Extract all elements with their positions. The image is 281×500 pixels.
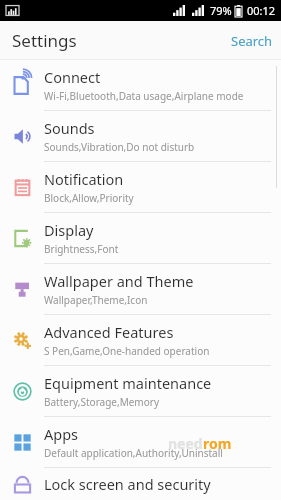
staticText: 00:12: [247, 3, 276, 18]
button[interactable]: Lock screen and security: [0, 468, 281, 500]
staticText: Default application,Authority,Uninstall: [44, 446, 223, 460]
button[interactable]: Connect: [0, 60, 281, 110]
staticText: Search: [231, 32, 273, 50]
staticText: Lock screen and security: [44, 474, 211, 494]
staticText: Sounds,Vibration,Do not disturb: [44, 140, 195, 154]
staticText: Notification: [44, 169, 124, 189]
staticText: 79%: [210, 3, 232, 18]
staticText: Equipment maintenance: [44, 373, 212, 393]
staticText: Advanced Features: [44, 322, 174, 342]
staticText: Sounds: [44, 118, 95, 138]
staticText: S Pen,Game,One-handed operation: [44, 344, 210, 358]
button[interactable]: Apps: [0, 417, 281, 467]
staticText: Display: [44, 220, 94, 240]
button[interactable]: Search: [223, 26, 281, 56]
staticText: rom: [203, 434, 232, 452]
button[interactable]: Notification: [0, 162, 281, 212]
staticText: Battery,Storage,Memory: [44, 395, 159, 409]
staticText: Apps: [44, 424, 79, 444]
staticText: Block,Allow,Priority: [44, 191, 134, 205]
button[interactable]: Display: [0, 213, 281, 263]
staticText: Wi-Fi,Bluetooth,Data usage,Airplane mode: [44, 89, 244, 103]
button[interactable]: Wallpaper and Theme: [0, 264, 281, 314]
button[interactable]: Sounds: [0, 111, 281, 161]
staticText: Wallpaper and Theme: [44, 271, 194, 291]
staticText: Brightness,Font: [44, 242, 119, 256]
staticText: Settings: [12, 29, 77, 52]
staticText: Wallpaper,Theme,Icon: [44, 293, 148, 307]
button[interactable]: Advanced Features: [0, 315, 281, 365]
button[interactable]: Equipment maintenance: [0, 366, 281, 416]
staticText: need: [168, 434, 203, 452]
staticText: Connect: [44, 67, 101, 87]
